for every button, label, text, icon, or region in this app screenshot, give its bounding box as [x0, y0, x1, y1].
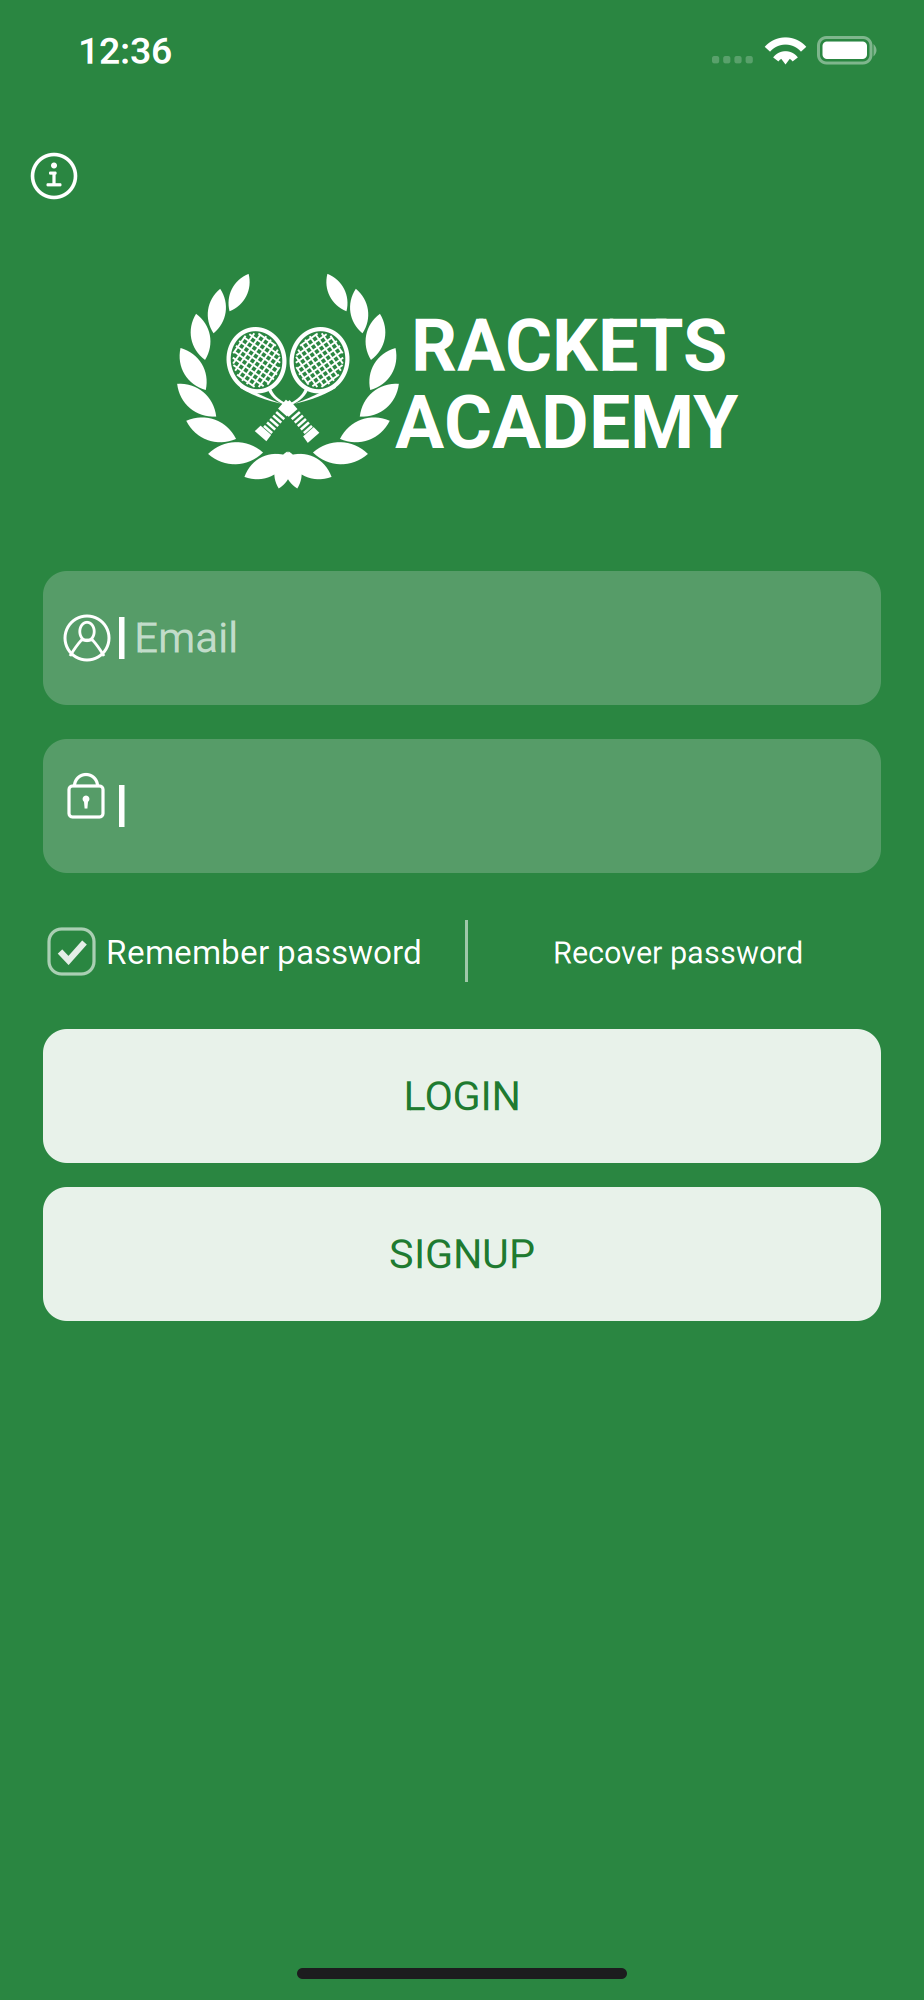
staticText: LOGIN: [403, 1072, 520, 1120]
button[interactable]: Remember password: [0, 0, 924, 2000]
staticText: Email: [134, 613, 238, 663]
staticText: Remember password: [106, 933, 422, 972]
staticText: ACADEMY: [395, 380, 738, 466]
staticText: SIGNUP: [389, 1230, 535, 1278]
button[interactable]: LOGIN: [0, 0, 838, 134]
staticText: 12:36: [78, 29, 172, 73]
button[interactable]: Recover password: [0, 0, 310, 64]
button[interactable]: SIGNUP: [0, 0, 838, 134]
staticText: RACKETS: [411, 304, 727, 388]
button[interactable]: Information: [0, 0, 924, 2000]
staticText: Recover password: [553, 935, 803, 971]
